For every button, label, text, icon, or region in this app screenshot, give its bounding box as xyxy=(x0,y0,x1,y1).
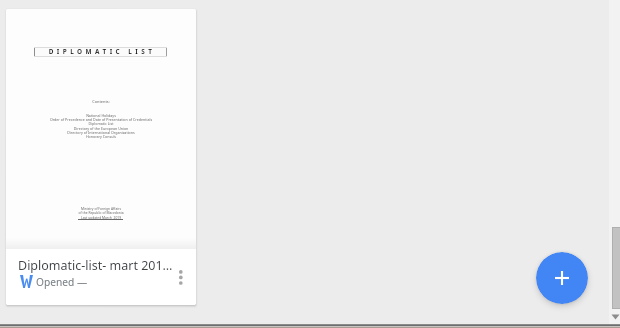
staticText: Contents: xyxy=(6,99,196,104)
staticText: Last updated March, 2019 xyxy=(6,215,196,219)
staticText: Opened — xyxy=(36,275,88,289)
staticText: Ministry of Foreign Affairs xyxy=(6,206,196,210)
staticText: Order of Precedence and Date of Presenta… xyxy=(6,117,196,122)
button[interactable]: Create new file xyxy=(536,252,588,304)
staticText: National Holidays xyxy=(6,113,196,118)
staticText: of the Republic of Macedonia xyxy=(6,210,196,214)
staticText: DIPLOMATIC LIST xyxy=(37,47,167,56)
staticText: Diplomatic List xyxy=(6,121,196,126)
staticText: Diplomatic-list- mart 201… xyxy=(18,257,173,274)
button[interactable]: Scroll xyxy=(612,227,620,309)
button[interactable]: Scroll down xyxy=(611,314,620,320)
button[interactable]: DIPLOMATIC LIST xyxy=(6,9,196,305)
button[interactable]: More options xyxy=(166,258,196,298)
staticText: Directory of the European Union xyxy=(6,126,196,131)
staticText: Directory of International Organizations xyxy=(6,130,196,135)
staticText: Honorary Consuls xyxy=(6,134,196,139)
